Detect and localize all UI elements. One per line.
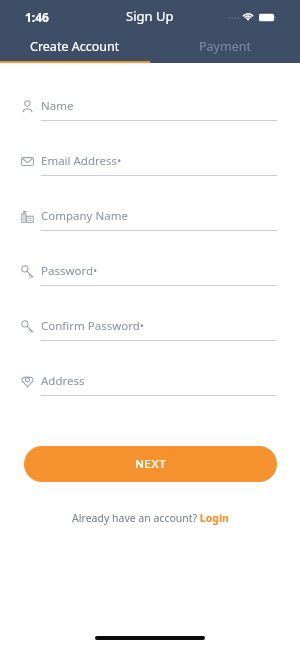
- button[interactable]: Email Address•: [0, 151, 300, 206]
- staticText: Already have an account? Login: [72, 511, 229, 525]
- staticText: Sign Up: [126, 7, 174, 25]
- button[interactable]: Name: [0, 96, 300, 151]
- staticText: 1:46: [25, 9, 49, 25]
- button[interactable]: NEXT: [24, 446, 277, 482]
- staticText: NEXT: [135, 456, 167, 472]
- staticText: Company Name: [41, 208, 128, 224]
- staticText: Payment: [199, 38, 251, 55]
- button[interactable]: Address: [0, 371, 300, 426]
- button[interactable]: Password•: [0, 261, 300, 316]
- staticText: Password•: [41, 263, 98, 279]
- staticText: Create Account: [30, 38, 120, 55]
- staticText: Confirm Password•: [41, 318, 145, 334]
- button[interactable]: Confirm Password•: [0, 316, 300, 371]
- staticText: Name: [41, 98, 74, 114]
- button[interactable]: Payment: [150, 34, 300, 63]
- staticText: Address: [41, 373, 85, 389]
- staticText: Email Address•: [41, 153, 122, 169]
- button[interactable]: Already have an account? Login: [72, 511, 229, 525]
- button[interactable]: Company Name: [0, 206, 300, 261]
- button[interactable]: Create Account: [0, 34, 150, 63]
